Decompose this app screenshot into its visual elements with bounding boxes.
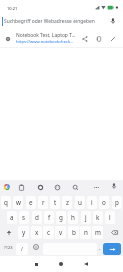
button[interactable]: w	[13, 196, 23, 209]
button[interactable]: Edit	[106, 32, 120, 46]
button[interactable]: Clipboard	[16, 180, 27, 194]
button[interactable]: /	[16, 243, 28, 255]
staticText: u	[78, 198, 82, 207]
button[interactable]: Search	[70, 180, 81, 194]
button[interactable]: Recents	[28, 256, 44, 272]
button[interactable]: j	[81, 211, 91, 224]
staticText: f	[48, 213, 51, 222]
staticText: o	[102, 198, 106, 207]
button[interactable]: c	[43, 226, 54, 239]
button[interactable]: n	[80, 226, 91, 239]
button[interactable]: Backspace	[108, 226, 120, 239]
button[interactable]: Copy	[92, 32, 106, 46]
button[interactable]: Share	[78, 32, 92, 46]
staticText: h	[71, 213, 75, 222]
button[interactable]: b	[68, 226, 79, 239]
button[interactable]: .	[96, 241, 103, 253]
staticText: g	[59, 213, 63, 222]
button[interactable]: p	[112, 196, 122, 209]
staticText: r	[42, 198, 45, 207]
staticText: b	[72, 228, 76, 237]
button[interactable]: Notebook Test, Laptop T…	[0, 30, 123, 47]
button[interactable]: Voice input	[108, 180, 119, 191]
staticText: k	[96, 213, 100, 222]
staticText: a	[10, 213, 14, 222]
button[interactable]: Voice search	[106, 14, 120, 28]
button[interactable]: g	[56, 211, 66, 224]
staticText: l	[109, 213, 111, 222]
staticText: /	[21, 246, 23, 253]
button[interactable]: q	[1, 196, 11, 209]
button[interactable]: v	[55, 226, 66, 239]
button[interactable]: a	[7, 211, 17, 224]
button[interactable]: Shift	[3, 226, 15, 239]
button[interactable]: t	[50, 196, 60, 209]
button[interactable]: e	[26, 196, 36, 209]
button[interactable]: o	[99, 196, 109, 209]
button[interactable]: Back	[78, 256, 94, 272]
staticText: e	[29, 198, 33, 207]
button[interactable]: Emoji	[30, 241, 42, 253]
button[interactable]: z	[62, 196, 72, 209]
button[interactable]: f	[44, 211, 54, 224]
button[interactable]: Stickers	[52, 180, 63, 194]
staticText: t	[54, 198, 57, 207]
button[interactable]: m	[92, 226, 103, 239]
button[interactable]: Google	[1, 180, 12, 194]
button[interactable]: l	[105, 211, 115, 224]
staticText: ?123	[4, 245, 13, 250]
staticText: https://www.notebookcheck…	[16, 39, 74, 45]
staticText: Suchbegriff oder Webadresse eingeben	[4, 18, 95, 25]
staticText: c	[47, 228, 51, 237]
staticText: d	[35, 213, 39, 222]
button[interactable]: d	[32, 211, 42, 224]
button[interactable]: x	[31, 226, 42, 239]
button[interactable]: Enter	[103, 243, 121, 255]
staticText: x	[35, 228, 39, 237]
button[interactable]: k	[93, 211, 103, 224]
button[interactable]: More	[91, 180, 102, 194]
staticText: j	[85, 213, 87, 222]
staticText: s	[22, 213, 26, 222]
button[interactable]: ?123	[1, 241, 16, 253]
staticText: i	[91, 198, 93, 207]
staticText: Notebook Test, Laptop T…	[16, 32, 76, 39]
button[interactable]: h	[68, 211, 78, 224]
staticText: p	[115, 198, 119, 207]
button[interactable]: r	[38, 196, 48, 209]
button[interactable]: s	[19, 211, 29, 224]
staticText: z	[66, 198, 69, 207]
staticText: v	[59, 228, 63, 237]
staticText: y	[22, 228, 26, 237]
staticText: 10:21	[7, 6, 18, 11]
staticText: m	[95, 228, 101, 237]
staticText: .	[99, 244, 101, 251]
staticText: w	[16, 198, 21, 207]
staticText: q	[4, 198, 8, 207]
button[interactable]: i	[87, 196, 97, 209]
button[interactable]: u	[75, 196, 85, 209]
button[interactable]: y	[18, 226, 29, 239]
button[interactable]: Home	[53, 256, 69, 272]
button[interactable]: Settings	[35, 180, 46, 194]
staticText: n	[84, 228, 88, 237]
